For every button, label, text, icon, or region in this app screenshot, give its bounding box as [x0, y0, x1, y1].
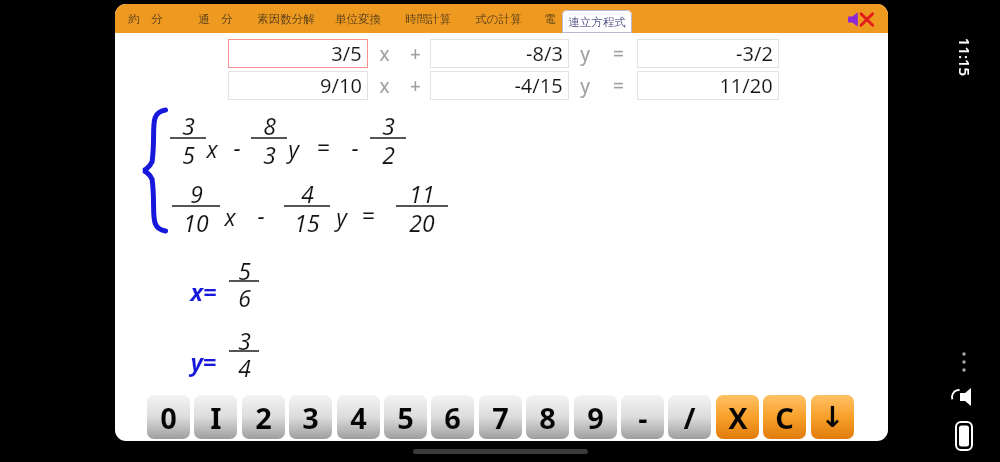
button[interactable]: 9	[574, 395, 617, 439]
button[interactable]: 通 分	[192, 4, 238, 33]
staticText: =	[613, 73, 624, 99]
staticText: 3	[238, 325, 251, 350]
staticText: 9/10	[320, 72, 362, 99]
staticText: x=	[190, 275, 217, 308]
button[interactable]: 6	[431, 395, 474, 439]
staticText: 7	[492, 398, 509, 437]
button[interactable]: 素因数分解	[250, 4, 322, 33]
staticText: 2	[382, 139, 395, 166]
staticText: 0	[160, 398, 177, 437]
staticText: 6	[444, 398, 461, 437]
staticText: 2	[255, 398, 272, 437]
staticText: +	[410, 73, 421, 99]
staticText: 9	[190, 178, 203, 205]
staticText: 3	[302, 398, 319, 437]
staticText: y=	[190, 345, 217, 378]
staticText: 5	[238, 255, 251, 280]
staticText: -	[257, 199, 265, 230]
staticText: x	[206, 133, 218, 164]
button[interactable]: 3	[289, 395, 332, 439]
button[interactable]: 8	[526, 395, 569, 439]
staticText: 3	[263, 139, 276, 166]
staticText: 11/20	[719, 72, 773, 99]
staticText: /	[683, 398, 696, 437]
staticText: -	[233, 131, 241, 162]
staticText: 5	[182, 139, 195, 166]
button[interactable]: 2	[242, 395, 285, 439]
staticText: x	[379, 41, 390, 67]
staticText: 9	[587, 398, 604, 437]
staticText: 11	[409, 178, 435, 205]
staticText: 連立方程式	[568, 15, 626, 29]
staticText: =	[316, 131, 330, 162]
button[interactable]: 時間計算	[398, 4, 458, 33]
staticText: I	[210, 398, 222, 437]
button[interactable]: Enter	[811, 395, 854, 439]
button[interactable]: -4/15	[430, 71, 569, 100]
staticText: 8	[539, 398, 556, 437]
button[interactable]: 1	[194, 395, 237, 439]
staticText: -	[638, 398, 648, 437]
staticText: 3	[382, 110, 395, 137]
button[interactable]: Delete	[716, 395, 759, 439]
staticText: 4	[350, 398, 367, 437]
button[interactable]: 単位変換	[328, 4, 388, 33]
staticText: 通 分	[198, 11, 233, 27]
staticText: y	[288, 133, 299, 164]
staticText: 単位変換	[335, 12, 381, 26]
button[interactable]: Divide	[668, 395, 711, 439]
button[interactable]: 0	[147, 395, 190, 439]
staticText: 電 卓	[544, 11, 579, 27]
staticText: -4/15	[514, 72, 563, 99]
staticText: y	[336, 201, 347, 232]
button[interactable]: -8/3	[430, 39, 569, 68]
staticText: =	[361, 199, 375, 230]
staticText: +	[410, 41, 421, 67]
button[interactable]: 11/20	[637, 71, 779, 100]
staticText: x	[224, 201, 236, 232]
staticText: 5	[397, 398, 414, 437]
staticText: X	[728, 398, 748, 437]
staticText: =	[613, 41, 624, 67]
button[interactable]: 連立方程式	[562, 10, 632, 33]
staticText: x	[379, 73, 390, 99]
button[interactable]: -3/2	[637, 39, 779, 68]
staticText: 11:15	[954, 37, 974, 76]
staticText: 15	[294, 207, 320, 234]
button[interactable]: 式の計算	[468, 4, 528, 33]
staticText: -	[351, 131, 359, 162]
staticText: y	[580, 41, 590, 67]
staticText: C	[775, 398, 794, 437]
staticText: 8	[263, 110, 276, 137]
button[interactable]: 4	[337, 395, 380, 439]
staticText: 素因数分解	[257, 12, 315, 26]
staticText: ↓	[820, 400, 845, 434]
staticText: y	[580, 73, 590, 99]
staticText: 式の計算	[475, 12, 522, 26]
staticText: 4	[301, 178, 314, 205]
button[interactable]: 5	[384, 395, 427, 439]
staticText: 4	[238, 352, 251, 377]
button[interactable]: 7	[479, 395, 522, 439]
staticText: -8/3	[526, 40, 563, 67]
button[interactable]: 約 分	[122, 4, 168, 33]
button[interactable]: Sound off	[844, 7, 876, 31]
staticText: 3/5	[331, 40, 362, 67]
button[interactable]: 電 卓	[538, 4, 584, 33]
button[interactable]: Clear	[763, 395, 806, 439]
staticText: 時間計算	[405, 12, 451, 26]
staticText: -3/2	[736, 40, 773, 67]
staticText: 6	[238, 282, 251, 307]
button[interactable]: 3/5	[228, 39, 368, 68]
button[interactable]: Minus	[621, 395, 664, 439]
staticText: 20	[409, 207, 435, 234]
staticText: 約 分	[128, 11, 163, 27]
staticText: 3	[182, 110, 195, 137]
staticText: 10	[183, 207, 209, 234]
button[interactable]: 9/10	[228, 71, 368, 100]
